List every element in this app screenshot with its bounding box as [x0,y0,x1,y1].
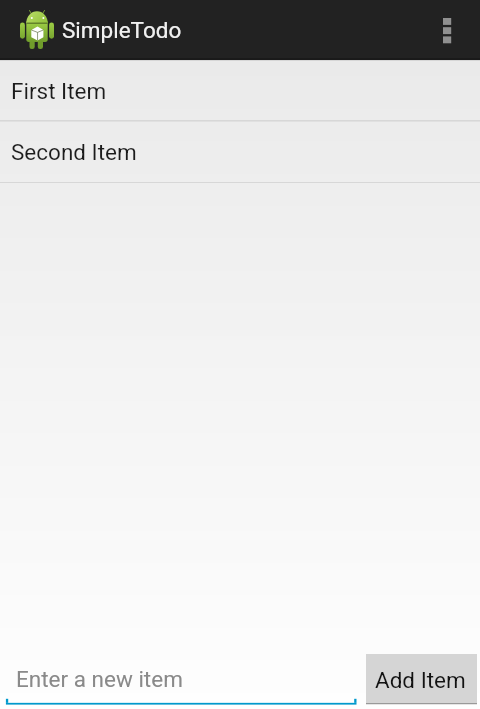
staticText: First Item [11,78,107,104]
staticText: Add Item [375,667,466,693]
button[interactable]: First Item [0,60,480,122]
staticText: Enter a new item [16,666,183,692]
button[interactable]: Enter a new item [0,650,363,709]
button[interactable]: Add Item [366,654,477,705]
button[interactable]: Second Item [0,122,480,184]
button[interactable]: More options [424,2,468,58]
staticText: SimpleTodo [62,17,182,43]
staticText: Second Item [11,139,137,165]
